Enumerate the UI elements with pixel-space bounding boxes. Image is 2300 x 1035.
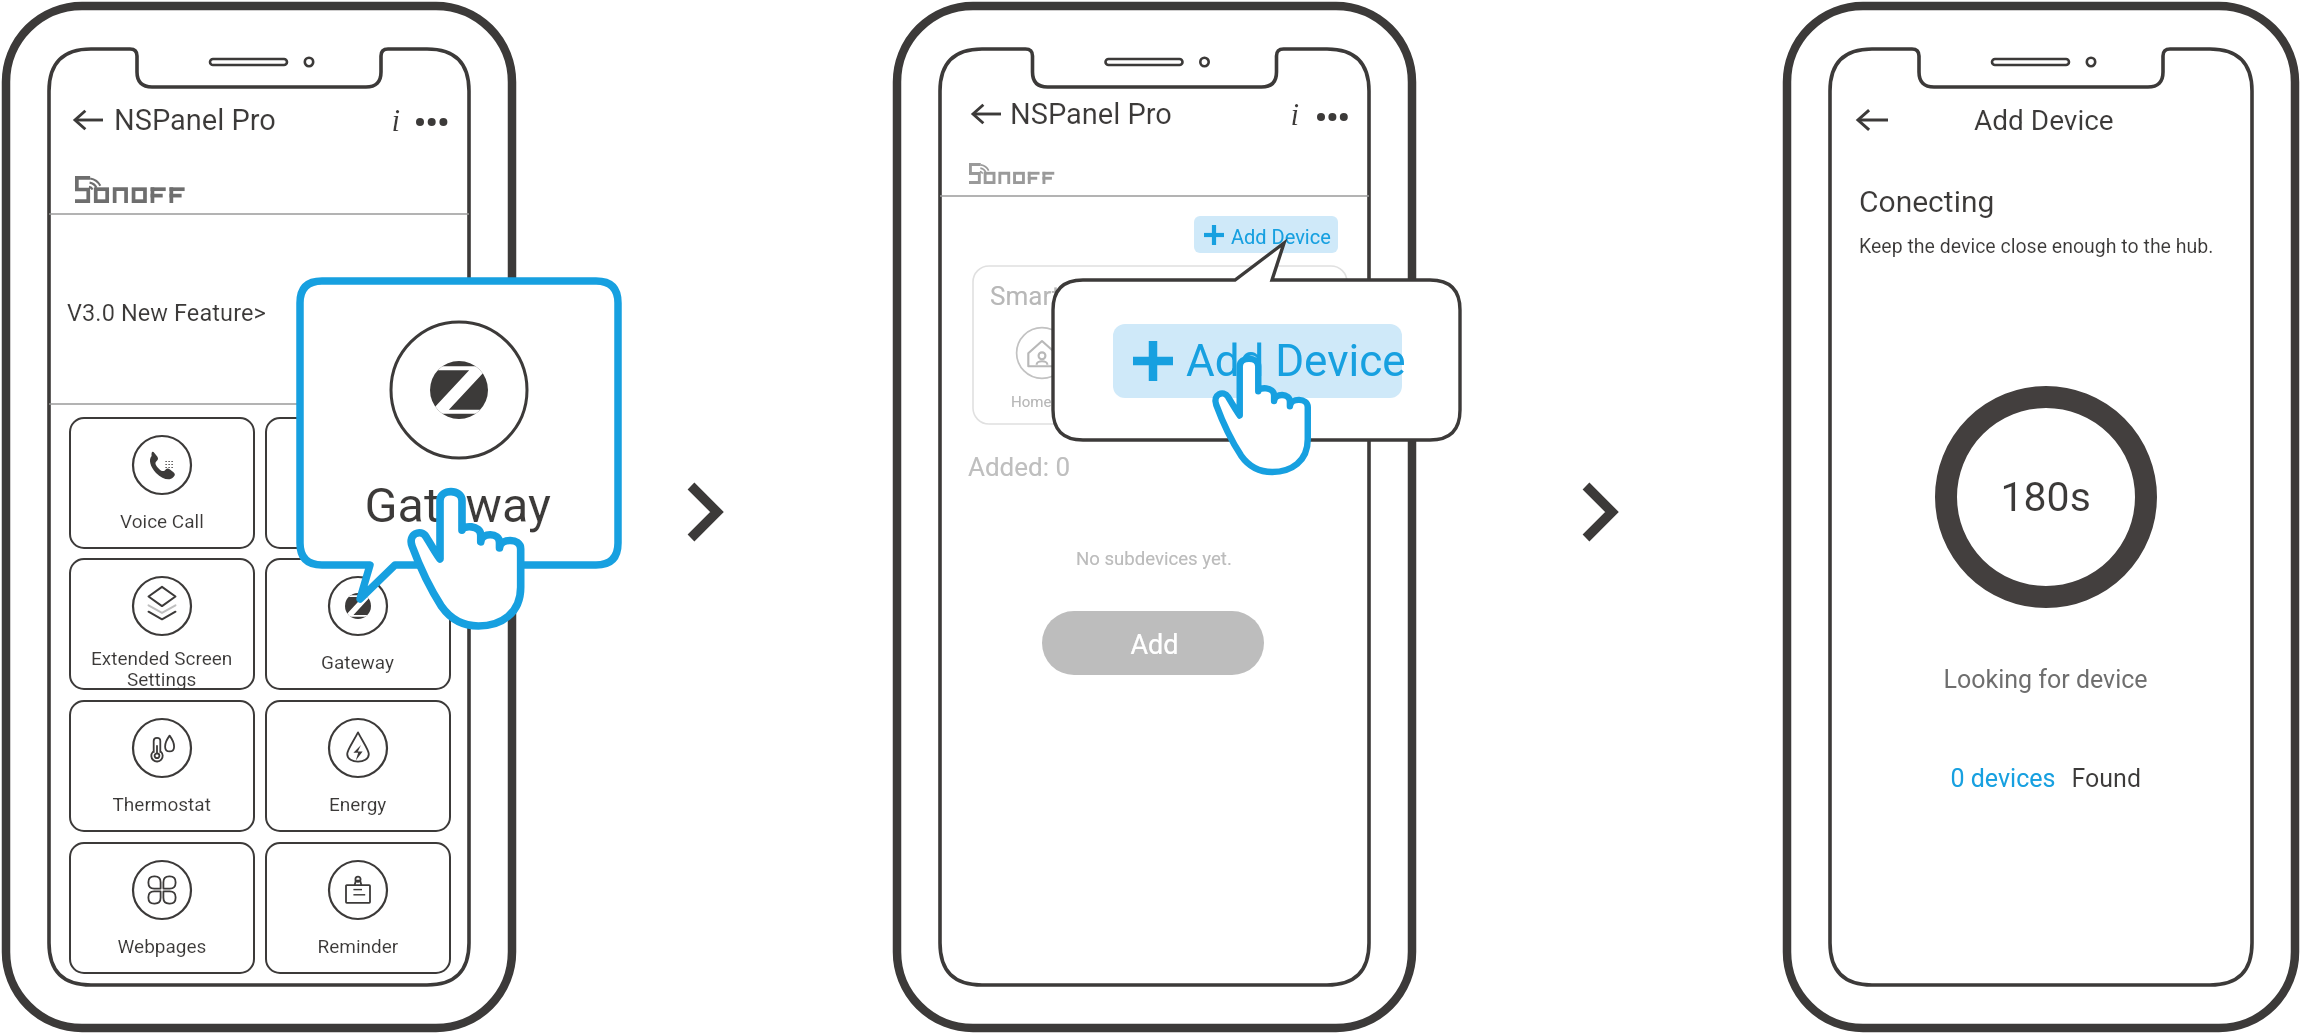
button[interactable]: Thermostat — [70, 701, 254, 831]
button[interactable]: Reminder — [266, 843, 450, 973]
button[interactable]: Add Device — [1944, 99, 2144, 143]
button[interactable]: 180 seconds remaining — [1935, 386, 2157, 608]
button[interactable]: Add Device — [1113, 324, 1402, 398]
button[interactable]: V3.0 New Feature — [54, 281, 469, 401]
button[interactable]: NSPanel Pro — [1000, 94, 1130, 138]
button[interactable]: Back — [1845, 99, 1899, 143]
button[interactable]: Add — [1042, 614, 1270, 680]
button[interactable]: Smart Home — [968, 272, 1342, 425]
button[interactable]: Webpages — [70, 843, 254, 973]
button[interactable]: Gateway — [266, 559, 450, 689]
button[interactable]: Voice Call — [70, 418, 254, 548]
button[interactable]: Info — [1280, 94, 1320, 136]
button[interactable]: More options — [1320, 94, 1366, 136]
button[interactable]: Extended Screen Settings — [70, 559, 254, 689]
button[interactable]: Info — [380, 100, 420, 142]
button[interactable]: Add Device — [1190, 219, 1342, 254]
button[interactable]: Thermostat card — [266, 418, 450, 548]
button[interactable]: Back — [55, 100, 109, 144]
button[interactable]: More options — [420, 100, 466, 142]
button[interactable]: Back — [946, 94, 1000, 138]
button[interactable]: NSPanel Pro — [109, 100, 239, 144]
button[interactable]: Energy — [266, 701, 450, 831]
